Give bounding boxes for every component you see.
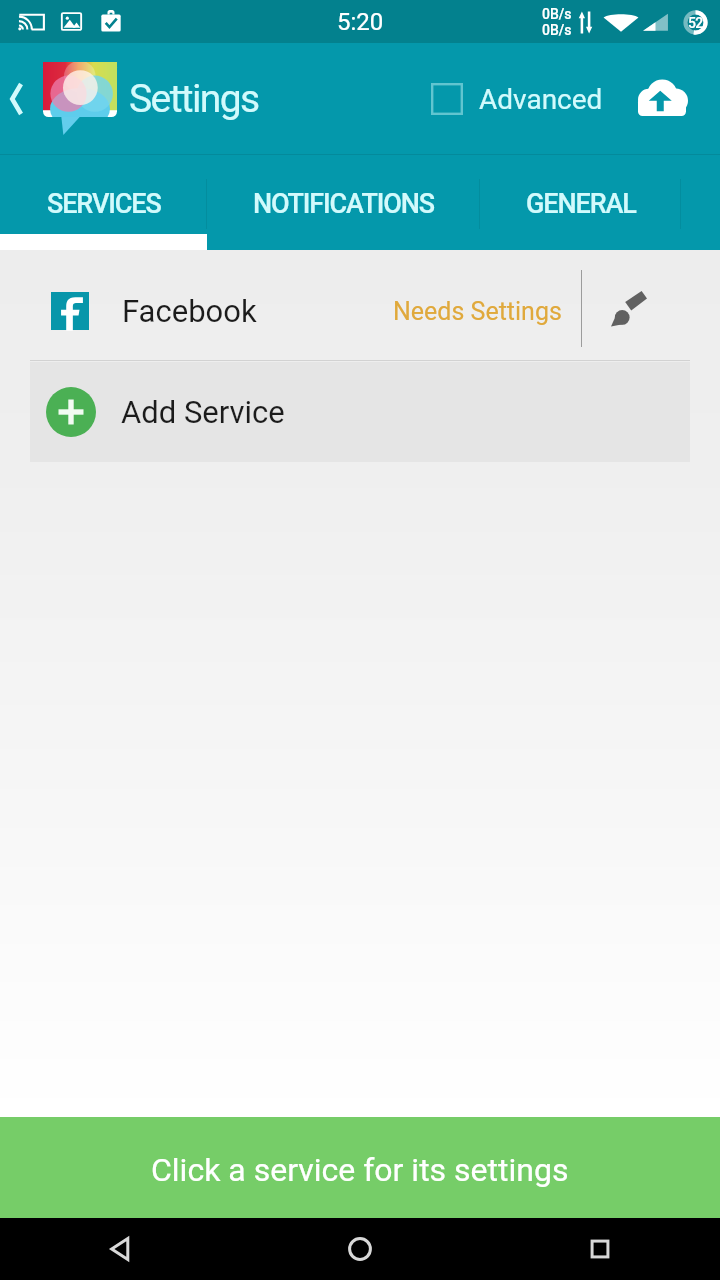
staticText: Add Service — [121, 394, 285, 430]
staticText: Needs Settings — [393, 297, 562, 326]
staticText: 52 — [688, 15, 703, 31]
staticText: 0B/s — [542, 6, 572, 22]
staticText: Settings — [129, 76, 259, 122]
staticText: Advanced — [479, 83, 603, 116]
staticText: GENERAL — [526, 188, 636, 220]
button[interactable]: Facebook — [0, 256, 720, 366]
button[interactable]: Back — [0, 1218, 240, 1280]
staticText: Facebook — [122, 293, 257, 329]
staticText: Click a service for its settings — [151, 1151, 569, 1189]
button[interactable]: Customise appearance — [582, 250, 690, 360]
button[interactable]: Click a service for its settings — [0, 1117, 720, 1218]
button[interactable]: Navigate up — [0, 43, 40, 155]
staticText: NOTIFICATIONS — [253, 188, 435, 220]
staticText: SERVICES — [47, 188, 161, 220]
button[interactable]: GENERAL — [480, 155, 681, 250]
button[interactable]: Backup to cloud — [630, 67, 694, 131]
button[interactable]: NOTIFICATIONS — [207, 155, 480, 250]
button[interactable]: Home — [240, 1218, 480, 1280]
staticText: 5:20 — [337, 8, 384, 36]
staticText: 0B/s — [542, 22, 572, 38]
button[interactable]: Add Service — [30, 362, 690, 462]
button[interactable]: SERVICES — [0, 155, 207, 250]
button[interactable]: Recent apps — [480, 1218, 720, 1280]
button[interactable]: Advanced — [431, 67, 603, 131]
